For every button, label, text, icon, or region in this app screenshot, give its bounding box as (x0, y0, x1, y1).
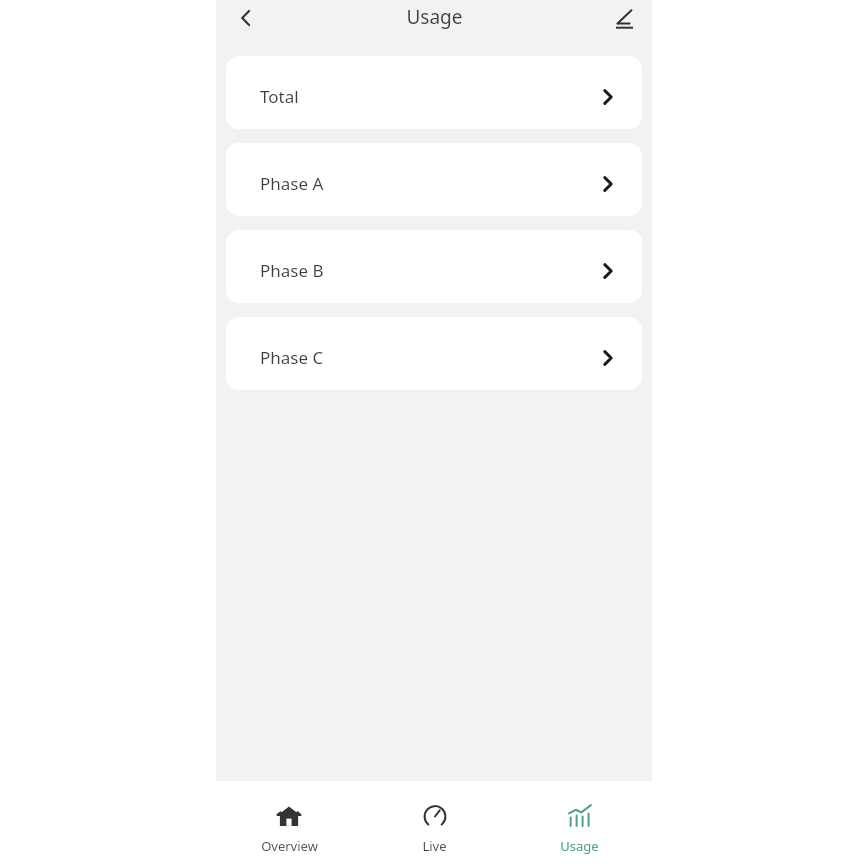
button[interactable]: Live (362, 781, 507, 868)
staticText: Phase C (260, 346, 324, 369)
button[interactable]: Overview (216, 781, 362, 868)
staticText: Total (260, 85, 299, 108)
staticText: Live (422, 837, 447, 855)
button[interactable]: Phase A (226, 143, 642, 216)
button[interactable]: Usage (507, 781, 652, 868)
button[interactable]: Edit (602, 0, 646, 36)
staticText: Usage (560, 837, 599, 855)
staticText: Overview (261, 837, 318, 855)
staticText: Phase B (260, 259, 324, 282)
staticText: Usage (406, 4, 463, 30)
staticText: Phase A (260, 172, 324, 195)
button[interactable]: Phase B (226, 230, 642, 303)
button[interactable]: Total (226, 56, 642, 129)
button[interactable]: Back (224, 0, 268, 36)
button[interactable]: Phase C (226, 317, 642, 390)
